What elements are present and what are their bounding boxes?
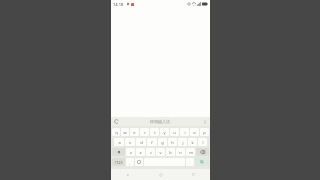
staticText: ?123 [115, 160, 123, 165]
button[interactable]: f [147, 138, 157, 146]
staticText: l [202, 140, 204, 145]
staticText: h [171, 140, 174, 145]
button[interactable]: v [156, 148, 165, 156]
staticText: g [161, 140, 164, 145]
staticText: w [123, 130, 127, 135]
staticText: b [169, 150, 172, 155]
staticText: m [189, 150, 193, 155]
button[interactable]: p [200, 128, 209, 136]
staticText: o [193, 130, 196, 135]
staticText: e [133, 130, 136, 135]
button[interactable]: r [140, 128, 149, 136]
staticText: , [129, 160, 131, 165]
button[interactable]: y [160, 128, 169, 136]
staticText: 搜狗输入法 [150, 119, 170, 124]
button[interactable]: c [146, 148, 155, 156]
button[interactable]: b [166, 148, 175, 156]
staticText: q [115, 130, 118, 135]
staticText: f [151, 140, 153, 145]
staticText: p [203, 130, 206, 135]
staticText: z [130, 150, 132, 155]
button[interactable]: g [158, 138, 167, 146]
staticText: r [144, 130, 146, 135]
staticText: . [189, 160, 191, 165]
staticText: k [191, 140, 194, 145]
button[interactable]: a [114, 138, 124, 146]
button[interactable]: w [121, 128, 129, 136]
button[interactable]: , [126, 158, 134, 166]
staticText: v [159, 150, 162, 155]
button[interactable]: o [190, 128, 199, 136]
button[interactable]: Backspace [196, 148, 209, 156]
button[interactable]: z [126, 148, 135, 156]
button[interactable]: Input method settings [113, 118, 120, 125]
button[interactable]: t [150, 128, 159, 136]
button[interactable]: Shift [112, 148, 125, 156]
button[interactable]: . [186, 158, 194, 166]
staticText: t [154, 130, 156, 135]
button[interactable]: u [170, 128, 179, 136]
button[interactable]: e [130, 128, 139, 136]
button[interactable]: j [178, 138, 187, 146]
button[interactable]: ?123 [112, 158, 125, 166]
staticText: x [139, 150, 142, 155]
staticText: n [179, 150, 182, 155]
button[interactable]: m [186, 148, 195, 156]
button[interactable]: x [136, 148, 145, 156]
button[interactable]: Emoji [135, 158, 143, 166]
button[interactable]: h [168, 138, 177, 146]
staticText: u [173, 130, 176, 135]
staticText: i [184, 130, 186, 135]
button[interactable]: Search [195, 158, 209, 166]
button[interactable]: q [112, 128, 120, 136]
button[interactable]: More options [201, 118, 208, 125]
staticText: a [118, 140, 121, 145]
button[interactable]: l [198, 138, 207, 146]
staticText: s [129, 140, 131, 145]
button[interactable]: k [188, 138, 197, 146]
staticText: c [150, 150, 152, 155]
staticText: y [163, 130, 166, 135]
button[interactable]: s [125, 138, 135, 146]
staticText: d [140, 140, 143, 145]
button[interactable]: n [176, 148, 185, 156]
staticText: 14:18 [113, 2, 124, 7]
button[interactable]: i [180, 128, 189, 136]
staticText: j [182, 140, 184, 145]
button[interactable]: d [136, 138, 146, 146]
